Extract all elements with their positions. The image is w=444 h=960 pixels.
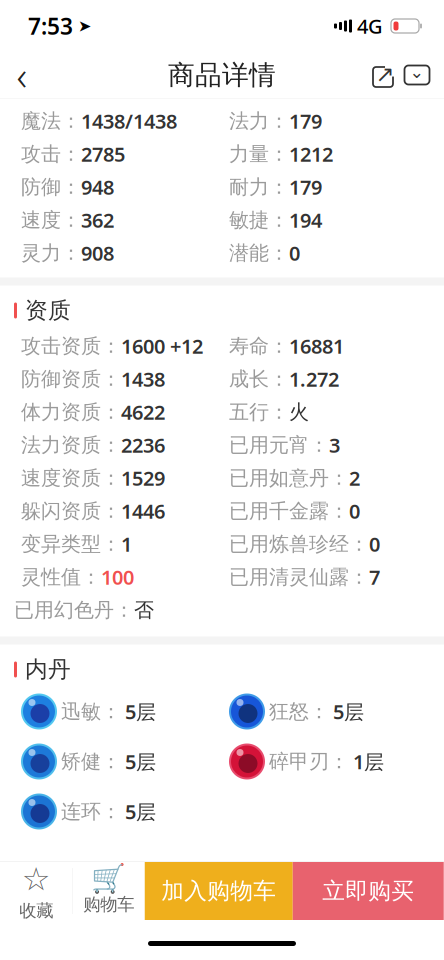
staticText: 变异类型：: [21, 532, 121, 556]
button[interactable]: ☆: [0, 862, 72, 920]
button[interactable]: 碎甲刃：: [229, 736, 437, 786]
button[interactable]: 狂怒：: [229, 686, 437, 736]
button[interactable]: 返回: [0, 53, 44, 97]
staticText: 火: [289, 400, 309, 424]
staticText: 7: [369, 564, 380, 590]
staticText: 4622: [121, 399, 165, 425]
staticText: 碎甲刃：: [269, 749, 349, 774]
staticText: 潜能：: [229, 241, 289, 265]
staticText: 1.272: [289, 366, 339, 392]
staticText: 已用千金露：: [229, 499, 349, 523]
staticText: 已用如意丹：: [229, 466, 349, 490]
staticText: 0: [369, 531, 380, 557]
staticText: 5层: [333, 698, 364, 725]
staticText: 加入购物车: [161, 877, 276, 905]
staticText: 179: [289, 174, 322, 200]
staticText: 灵性值：: [21, 565, 101, 589]
staticText: 商品详情: [168, 59, 276, 91]
staticText: 1212: [289, 141, 333, 167]
staticText: ‹: [16, 48, 27, 101]
staticText: 敏捷：: [229, 208, 289, 232]
staticText: 攻击资质：: [21, 334, 121, 358]
staticText: 362: [81, 207, 114, 233]
staticText: 魔法：: [21, 109, 81, 133]
staticText: 寿命：: [229, 334, 289, 358]
staticText: 7:53: [28, 11, 73, 41]
staticText: 体力资质：: [21, 400, 121, 424]
staticText: 179: [289, 108, 322, 134]
staticText: 5层: [125, 698, 156, 725]
staticText: 16881: [289, 333, 344, 359]
staticText: 194: [289, 207, 322, 233]
staticText: 否: [134, 598, 154, 622]
staticText: 0: [349, 498, 360, 524]
staticText: 收藏: [19, 900, 53, 921]
button[interactable]: 连环：: [21, 786, 229, 836]
staticText: 防御：: [21, 175, 81, 199]
staticText: 耐力：: [229, 175, 289, 199]
staticText: 1: [121, 531, 132, 557]
staticText: 已用幻色丹：: [14, 598, 134, 622]
button[interactable]: 分享: [366, 58, 400, 92]
button[interactable]: 🛒: [73, 862, 145, 920]
staticText: 力量：: [229, 142, 289, 166]
button[interactable]: 加入购物车: [145, 862, 293, 920]
staticText: 4G: [357, 13, 383, 39]
button[interactable]: 矫健：: [21, 736, 229, 786]
staticText: 躲闪资质：: [21, 499, 121, 523]
staticText: 立即购买: [322, 877, 414, 905]
staticText: 1438/1438: [81, 108, 177, 134]
staticText: 攻击：: [21, 142, 81, 166]
staticText: 速度：: [21, 208, 81, 232]
staticText: 1层: [353, 748, 384, 775]
staticText: 2785: [81, 141, 125, 167]
staticText: 3: [329, 432, 340, 458]
staticText: 资质: [25, 297, 71, 324]
staticText: 狂怒：: [269, 699, 329, 724]
staticText: 5层: [125, 748, 156, 775]
staticText: 1446: [121, 498, 165, 524]
staticText: 🛒: [91, 863, 126, 895]
staticText: 1529: [121, 465, 165, 491]
staticText: ➤: [78, 17, 91, 35]
staticText: 948: [81, 174, 114, 200]
staticText: 购物车: [83, 894, 134, 915]
staticText: 2236: [121, 432, 165, 458]
staticText: 1600 +12: [121, 333, 203, 359]
button[interactable]: 消息: [400, 58, 434, 92]
staticText: 迅敏：: [61, 699, 121, 724]
button[interactable]: 迅敏：: [21, 686, 229, 736]
staticText: 1438: [121, 366, 165, 392]
staticText: 908: [81, 240, 114, 266]
staticText: 法力资质：: [21, 433, 121, 457]
staticText: 已用炼兽珍经：: [229, 532, 369, 556]
staticText: 已用元宵：: [229, 433, 329, 457]
staticText: 2: [349, 465, 360, 491]
staticText: 矫健：: [61, 749, 121, 774]
button[interactable]: 立即购买: [293, 862, 444, 920]
staticText: 已用清灵仙露：: [229, 565, 369, 589]
staticText: 速度资质：: [21, 466, 121, 490]
staticText: 五行：: [229, 400, 289, 424]
staticText: 灵力：: [21, 241, 81, 265]
staticText: ☆: [22, 861, 51, 897]
staticText: 连环：: [61, 799, 121, 824]
staticText: 法力：: [229, 109, 289, 133]
staticText: ⌄: [409, 62, 424, 82]
staticText: 5层: [125, 798, 156, 825]
staticText: ↗: [375, 61, 394, 87]
staticText: 成长：: [229, 367, 289, 391]
staticText: 内丹: [25, 656, 71, 683]
staticText: 100: [101, 564, 134, 590]
staticText: 防御资质：: [21, 367, 121, 391]
staticText: 0: [289, 240, 300, 266]
